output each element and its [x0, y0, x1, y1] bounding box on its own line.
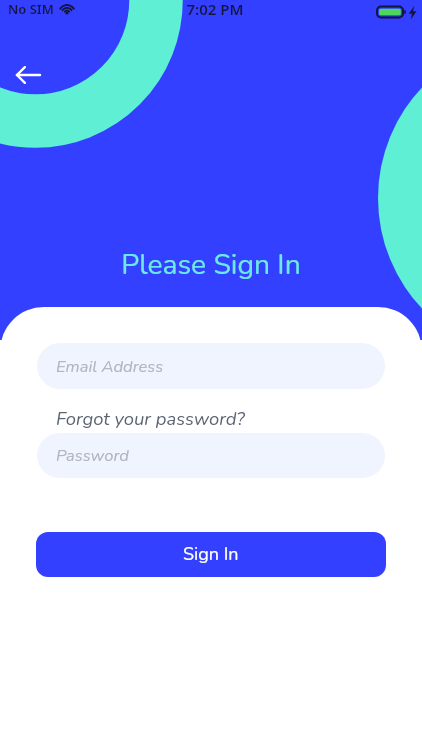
staticText: 7:02 PM: [4, 0, 422, 19]
staticText: Sign In: [183, 542, 239, 567]
staticText: Password: [56, 444, 129, 467]
staticText: Please Sign In: [0, 245, 422, 284]
button[interactable]: Email Address: [37, 343, 385, 389]
staticText: No SIM: [8, 0, 54, 18]
button[interactable]: Sign In: [36, 532, 386, 577]
staticText: Forgot your password?: [56, 406, 245, 431]
button[interactable]: Password: [37, 433, 385, 478]
button[interactable]: Back: [6, 53, 50, 97]
button[interactable]: Forgot your password?: [56, 406, 245, 431]
staticText: Email Address: [56, 355, 164, 378]
